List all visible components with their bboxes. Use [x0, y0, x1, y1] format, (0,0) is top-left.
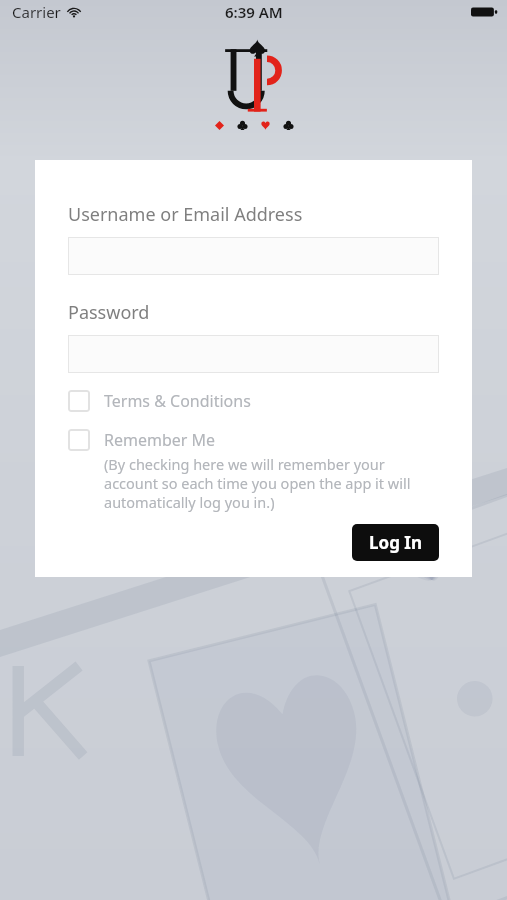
- button[interactable]: Remember Me: [68, 429, 439, 451]
- staticText: Carrier: [12, 2, 61, 22]
- button[interactable]: [68, 237, 439, 275]
- button[interactable]: Terms & Conditions: [68, 390, 439, 412]
- staticText: Terms & Conditions: [104, 390, 251, 412]
- staticText: 6:39 AM: [225, 2, 283, 22]
- staticText: Remember Me: [104, 429, 216, 451]
- button[interactable]: [68, 335, 439, 373]
- button[interactable]: Log In: [352, 524, 439, 561]
- staticText: Password: [68, 300, 150, 325]
- staticText: Log In: [369, 531, 422, 554]
- staticText: (By checking here we will remember your …: [104, 454, 439, 512]
- staticText: Username or Email Address: [68, 202, 303, 227]
